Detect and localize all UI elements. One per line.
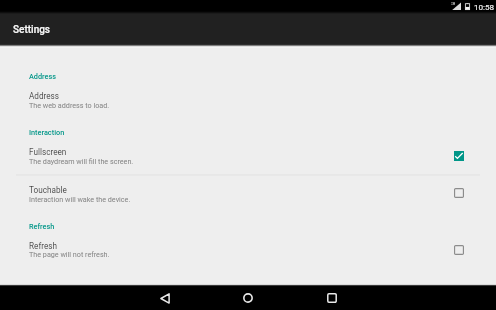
staticText: Settings — [13, 24, 51, 36]
staticText: Address — [29, 72, 57, 81]
staticText: The web address to load. — [29, 101, 110, 109]
button[interactable]: Checked — [449, 146, 469, 166]
button[interactable]: Home — [212, 286, 284, 310]
staticText: The daydream will fill the screen. — [29, 157, 134, 165]
button[interactable]: Back — [129, 286, 201, 310]
staticText: Refresh — [29, 222, 55, 231]
staticText: Interaction will wake the device. — [29, 195, 131, 203]
staticText: Interaction — [29, 128, 65, 137]
button[interactable]: Unchecked — [449, 240, 469, 260]
staticText: The page will not refresh. — [29, 250, 110, 258]
staticText: Address — [29, 91, 60, 101]
staticText: Refresh — [29, 241, 58, 251]
staticText: Touchable — [29, 185, 67, 195]
staticText: 10:58 — [474, 2, 495, 11]
button[interactable]: Recent apps — [296, 286, 368, 310]
button[interactable]: Unchecked — [449, 183, 469, 203]
staticText: Fullscreen — [29, 147, 67, 157]
